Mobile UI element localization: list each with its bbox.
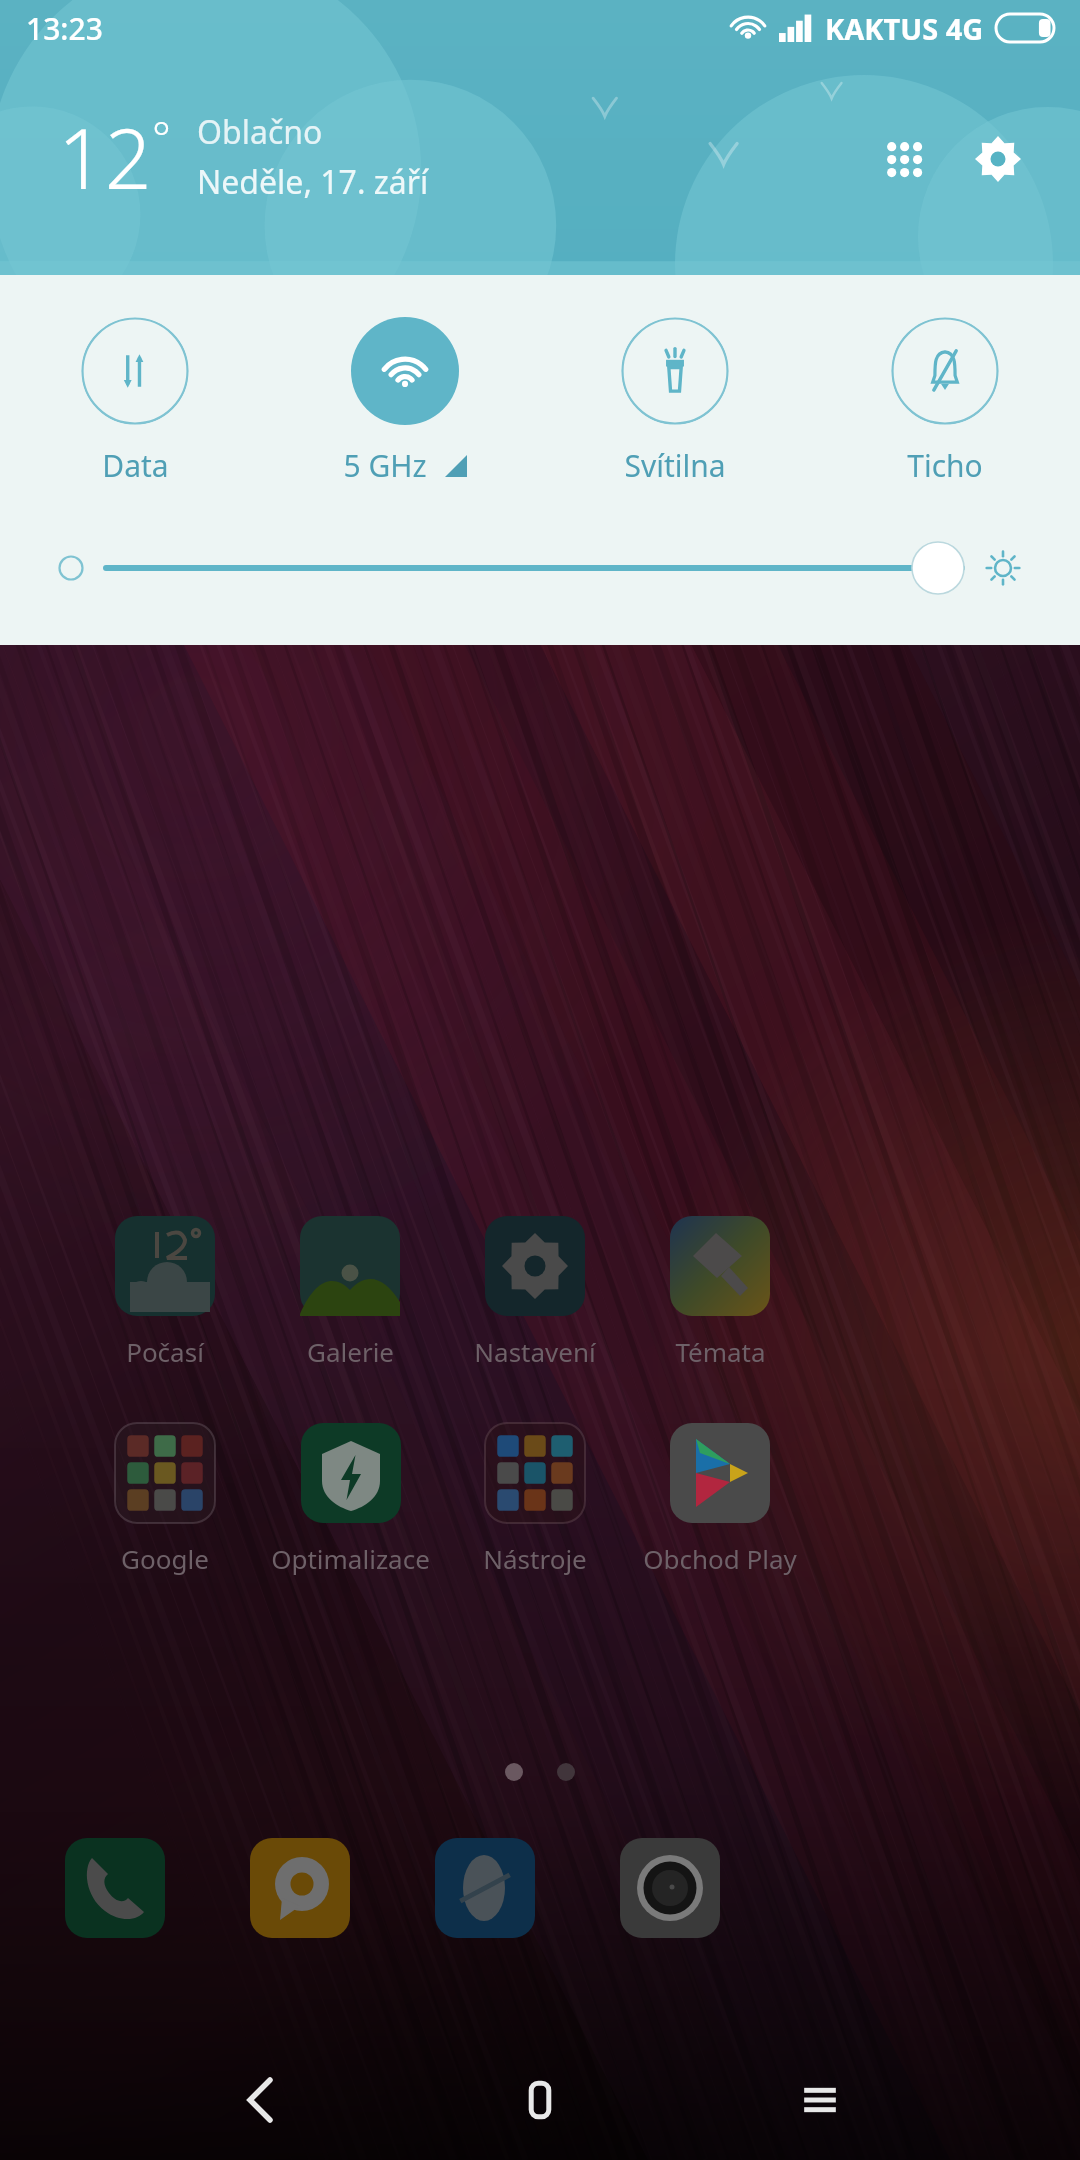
button[interactable]: Menu — [730, 2040, 910, 2160]
button[interactable]: Svítilna — [540, 317, 810, 486]
button[interactable]: 12 — [58, 101, 171, 213]
button[interactable]: Obchod Play — [620, 1423, 820, 1615]
staticText: 13:23 — [26, 8, 103, 49]
staticText: Data — [102, 445, 169, 486]
staticText: 12 — [58, 101, 152, 213]
button[interactable]: Optimalizace — [250, 1423, 450, 1615]
button[interactable]: Zprávy — [250, 1838, 350, 1938]
staticText: Počasí — [126, 1334, 204, 1369]
staticText: Svítilna — [624, 445, 726, 486]
staticText: Ticho — [907, 445, 983, 486]
button[interactable]: Data — [0, 317, 270, 486]
staticText: Google — [121, 1541, 209, 1576]
button[interactable]: Fotoaparát — [620, 1838, 720, 1938]
button[interactable]: 5 GHz — [270, 317, 540, 486]
staticText: Neděle, 17. září — [197, 160, 429, 204]
button[interactable]: Prohlížeč — [435, 1838, 535, 1938]
button[interactable]: Settings — [960, 121, 1036, 197]
button[interactable]: Home — [450, 2040, 630, 2160]
button[interactable]: Počasí — [65, 1216, 265, 1408]
button[interactable]: All toggles — [866, 121, 942, 197]
button[interactable] — [58, 533, 1022, 603]
staticText: 5 GHz — [343, 445, 427, 486]
staticText: Nástroje — [483, 1541, 587, 1576]
button[interactable]: Google — [65, 1423, 265, 1615]
button[interactable]: Nastavení — [435, 1216, 635, 1408]
button[interactable]: Telefon — [65, 1838, 165, 1938]
staticText: Nastavení — [474, 1334, 596, 1369]
staticText: KAKTUS 4G — [825, 9, 984, 48]
button[interactable]: Back — [170, 2040, 350, 2160]
staticText: ° — [152, 107, 171, 167]
staticText: Optimalizace — [271, 1541, 430, 1576]
staticText: Oblačno — [197, 110, 323, 154]
staticText: Obchod Play — [643, 1541, 797, 1576]
staticText: Témata — [675, 1334, 766, 1369]
button[interactable]: Ticho — [810, 317, 1080, 486]
button[interactable]: Témata — [620, 1216, 820, 1408]
button[interactable]: Galerie — [250, 1216, 450, 1408]
staticText: Galerie — [307, 1334, 394, 1369]
button[interactable]: Nástroje — [435, 1423, 635, 1615]
